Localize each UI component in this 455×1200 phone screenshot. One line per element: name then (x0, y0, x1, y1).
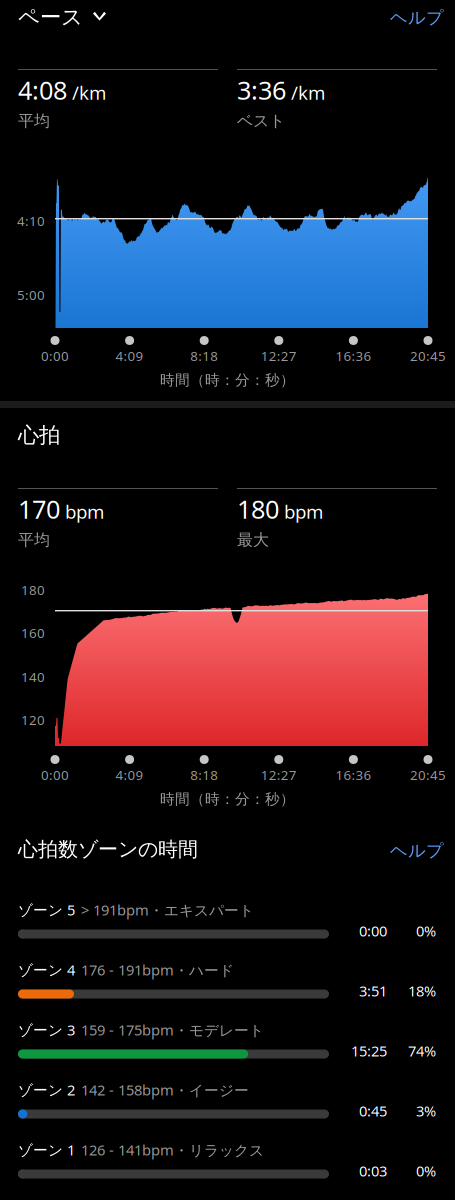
staticText: 0:45 (359, 1101, 387, 1120)
staticText: 4:09 (116, 766, 144, 784)
staticText: 180 (237, 492, 279, 526)
staticText: 平均 (18, 530, 50, 550)
staticText: 8:18 (190, 766, 218, 784)
staticText: 0% (416, 921, 436, 940)
staticText: 最大 (237, 530, 269, 550)
staticText: 0:00 (41, 766, 69, 784)
staticText: 心拍 (18, 422, 60, 448)
button[interactable]: ペース (18, 4, 106, 30)
button[interactable]: ゾーン 4 (18, 960, 437, 1006)
staticText: 20:45 (410, 766, 446, 784)
staticText: ペース (18, 4, 83, 30)
staticText: 3% (416, 1101, 436, 1120)
staticText: bpm (284, 499, 323, 524)
staticText: 3:51 (359, 981, 387, 1000)
staticText: 18% (408, 981, 436, 1000)
staticText: ゾーン 5 (18, 900, 75, 919)
button[interactable]: ゾーン 1 (18, 1140, 437, 1186)
staticText: 160 (21, 624, 45, 642)
staticText: ゾーン 2 (18, 1080, 75, 1099)
staticText: ヘルプ (390, 840, 444, 861)
staticText: ベスト (237, 111, 285, 131)
staticText: 176 - 191bpm・ハード (81, 960, 234, 980)
staticText: 0:00 (359, 921, 387, 940)
button[interactable]: ゾーン 2 (18, 1080, 437, 1126)
staticText: 0:00 (41, 347, 69, 365)
button[interactable]: ゾーン 5 (18, 900, 437, 946)
staticText: 心拍数ゾーンの時間 (18, 837, 198, 862)
staticText: 180 (21, 581, 45, 599)
button[interactable]: ヘルプ (390, 7, 444, 28)
staticText: 159 - 175bpm・モデレート (81, 1020, 264, 1040)
button[interactable]: ヘルプ (390, 840, 444, 861)
staticText: 平均 (18, 111, 50, 131)
staticText: ヘルプ (390, 7, 444, 28)
staticText: 142 - 158bpm・イージー (81, 1080, 249, 1100)
staticText: 5:00 (17, 286, 45, 304)
staticText: 16:36 (335, 766, 371, 784)
staticText: 15:25 (351, 1041, 387, 1060)
staticText: 時間（時：分：秒） (160, 790, 295, 808)
staticText: 0:03 (359, 1161, 387, 1180)
staticText: 12:27 (261, 347, 297, 365)
staticText: 8:18 (190, 347, 218, 365)
staticText: 20:45 (410, 347, 446, 365)
staticText: 170 (18, 492, 60, 526)
staticText: /km (72, 80, 106, 105)
staticText: /km (291, 80, 325, 105)
staticText: 74% (408, 1041, 436, 1060)
staticText: 4:09 (116, 347, 144, 365)
staticText: 120 (21, 711, 45, 729)
staticText: bpm (65, 499, 104, 524)
staticText: 12:27 (261, 766, 297, 784)
staticText: 3:36 (237, 73, 286, 107)
button[interactable]: ゾーン 3 (18, 1020, 437, 1066)
staticText: 126 - 141bpm・リラックス (81, 1140, 264, 1160)
staticText: ゾーン 3 (18, 1020, 75, 1039)
staticText: 4:08 (18, 73, 67, 107)
staticText: 16:36 (335, 347, 371, 365)
staticText: 0% (416, 1161, 436, 1180)
staticText: 140 (21, 668, 45, 686)
staticText: 時間（時：分：秒） (160, 371, 295, 389)
staticText: > 191bpm・エキスパート (81, 900, 254, 920)
staticText: ゾーン 1 (18, 1140, 75, 1159)
staticText: ゾーン 4 (18, 960, 75, 979)
staticText: 4:10 (17, 212, 45, 230)
